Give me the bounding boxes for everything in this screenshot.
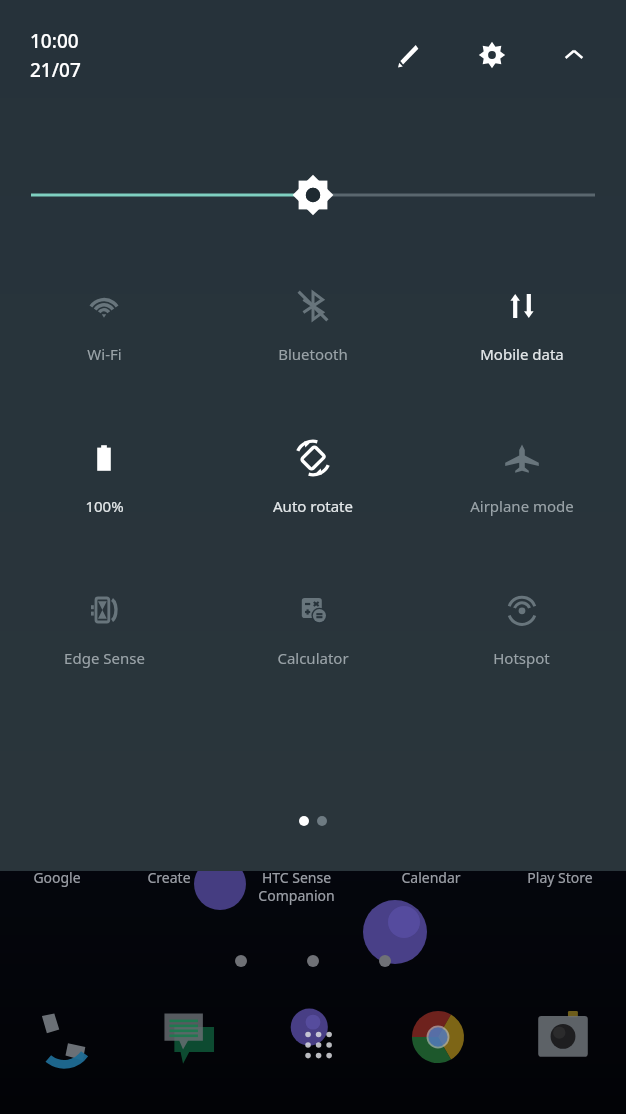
staticText: Airplane mode	[470, 496, 574, 516]
button[interactable]: Auto rotate	[208, 432, 417, 522]
button[interactable]: Chrome	[401, 1000, 475, 1074]
staticText: Play Store	[527, 868, 593, 887]
staticText: 21/07	[30, 57, 81, 83]
staticText: 10:00	[30, 28, 79, 54]
button[interactable]: Apps	[276, 1000, 350, 1074]
button[interactable]: Messages	[151, 1000, 225, 1074]
button[interactable]: Camera	[526, 1000, 600, 1074]
button[interactable]: Airplane mode	[417, 432, 626, 522]
button[interactable]: Calculator	[208, 584, 417, 674]
button[interactable]: Mobile data	[417, 280, 626, 370]
staticText: Calculator	[277, 648, 349, 668]
staticText: Bluetooth	[278, 344, 348, 364]
button[interactable]: Settings	[470, 33, 514, 77]
staticText: Hotspot	[493, 648, 550, 668]
staticText: Auto rotate	[273, 496, 353, 516]
button[interactable]: Bluetooth	[208, 280, 417, 370]
button[interactable]: Wi-Fi	[0, 280, 208, 370]
button[interactable]: Brightness	[0, 172, 626, 218]
button[interactable]: 100%	[0, 432, 208, 522]
button[interactable]: Collapse	[552, 33, 596, 77]
staticText: Google	[33, 868, 81, 887]
staticText: HTC Sense Companion	[258, 868, 335, 905]
staticText: Create	[147, 868, 191, 887]
staticText: Wi-Fi	[87, 344, 122, 364]
staticText: Mobile data	[480, 344, 564, 364]
button[interactable]: Edit	[388, 33, 432, 77]
button[interactable]: Edge Sense	[0, 584, 208, 674]
button[interactable]: Phone	[26, 1000, 100, 1074]
staticText: Edge Sense	[64, 648, 145, 668]
staticText: Calendar	[401, 868, 461, 887]
staticText: 100%	[85, 496, 124, 516]
button[interactable]: Hotspot	[417, 584, 626, 674]
